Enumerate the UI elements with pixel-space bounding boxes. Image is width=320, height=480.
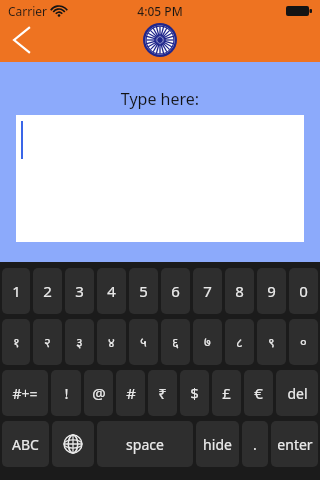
- button[interactable]: 9: [257, 268, 286, 314]
- staticText: १: [13, 333, 20, 351]
- staticText: enter: [277, 435, 313, 454]
- button[interactable]: .: [242, 421, 268, 467]
- button[interactable]: 7: [193, 268, 222, 314]
- staticText: ABC: [12, 435, 39, 454]
- button[interactable]: 8: [225, 268, 254, 314]
- staticText: ४: [108, 333, 115, 351]
- staticText: @: [92, 383, 106, 403]
- button[interactable]: enter: [271, 421, 318, 467]
- staticText: !: [64, 383, 69, 403]
- staticText: ₹: [158, 383, 167, 403]
- staticText: ६: [172, 333, 179, 351]
- button[interactable]: 3: [65, 268, 94, 314]
- staticText: 6: [171, 281, 180, 301]
- staticText: .: [253, 435, 257, 454]
- button[interactable]: #: [116, 370, 145, 416]
- button[interactable]: 5: [129, 268, 158, 314]
- button[interactable]: [16, 115, 304, 242]
- button[interactable]: Back: [4, 22, 40, 58]
- staticText: ५: [140, 333, 147, 351]
- staticText: $: [190, 383, 199, 403]
- button[interactable]: 2: [33, 268, 62, 314]
- staticText: Type here:: [0, 88, 320, 110]
- staticText: 8: [235, 281, 244, 301]
- button[interactable]: 6: [161, 268, 190, 314]
- staticText: 0: [299, 281, 308, 301]
- button[interactable]: ६: [161, 319, 190, 365]
- button[interactable]: ०: [289, 319, 318, 365]
- button[interactable]: ७: [193, 319, 222, 365]
- button[interactable]: ABC: [2, 421, 49, 467]
- button[interactable]: £: [212, 370, 241, 416]
- staticText: hide: [203, 435, 232, 454]
- button[interactable]: 1: [2, 268, 30, 314]
- button[interactable]: ₹: [148, 370, 177, 416]
- staticText: #+=: [12, 384, 38, 403]
- staticText: del: [287, 384, 308, 403]
- button[interactable]: ३: [65, 319, 94, 365]
- staticText: ९: [268, 333, 275, 351]
- staticText: 4: [107, 281, 116, 301]
- button[interactable]: १: [2, 319, 30, 365]
- button[interactable]: ४: [97, 319, 126, 365]
- staticText: 7: [203, 281, 212, 301]
- button[interactable]: $: [180, 370, 209, 416]
- staticText: 9: [267, 281, 276, 301]
- staticText: space: [126, 435, 164, 454]
- staticText: #: [126, 383, 136, 403]
- button[interactable]: 4: [97, 268, 126, 314]
- button[interactable]: ८: [225, 319, 254, 365]
- button[interactable]: 0: [289, 268, 318, 314]
- staticText: 2: [43, 281, 52, 301]
- button[interactable]: !: [51, 370, 81, 416]
- staticText: ७: [204, 333, 211, 351]
- staticText: ८: [236, 333, 243, 351]
- staticText: 5: [139, 281, 148, 301]
- staticText: २: [44, 333, 51, 351]
- staticText: 3: [75, 281, 84, 301]
- staticText: ३: [76, 333, 83, 351]
- button[interactable]: €: [244, 370, 273, 416]
- button[interactable]: #+=: [2, 370, 48, 416]
- button[interactable]: hide: [196, 421, 239, 467]
- button[interactable]: Change keyboard language: [52, 421, 94, 467]
- button[interactable]: २: [33, 319, 62, 365]
- button[interactable]: ९: [257, 319, 286, 365]
- staticText: 4:05 PM: [0, 3, 320, 19]
- staticText: £: [222, 383, 231, 403]
- button[interactable]: ५: [129, 319, 158, 365]
- staticText: 1: [12, 281, 21, 301]
- staticText: Carrier: [8, 3, 48, 19]
- button[interactable]: @: [84, 370, 113, 416]
- button[interactable]: del: [276, 370, 318, 416]
- button[interactable]: space: [97, 421, 193, 467]
- staticText: €: [254, 383, 263, 403]
- staticText: ०: [300, 333, 307, 351]
